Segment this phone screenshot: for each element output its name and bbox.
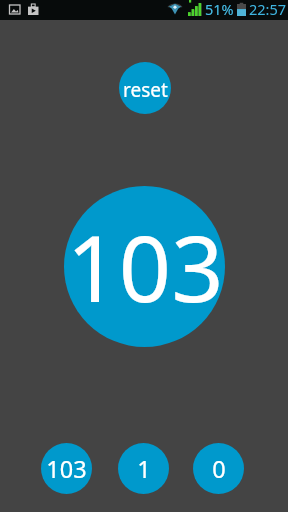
button[interactable]: count 103, tap to increment [64, 186, 225, 347]
button[interactable]: reset counter [119, 62, 171, 114]
staticText: 103 [46, 453, 87, 485]
staticText: 22:57 [249, 0, 287, 19]
button[interactable]: set to 0 [193, 443, 244, 494]
staticText: 51% [205, 0, 234, 19]
button[interactable]: step 1 [118, 443, 169, 494]
staticText: 0 [212, 453, 226, 485]
staticText: reset [123, 77, 168, 103]
staticText: 1 [137, 453, 151, 485]
button[interactable]: total 103 [41, 443, 92, 494]
staticText: 103 [66, 204, 224, 329]
